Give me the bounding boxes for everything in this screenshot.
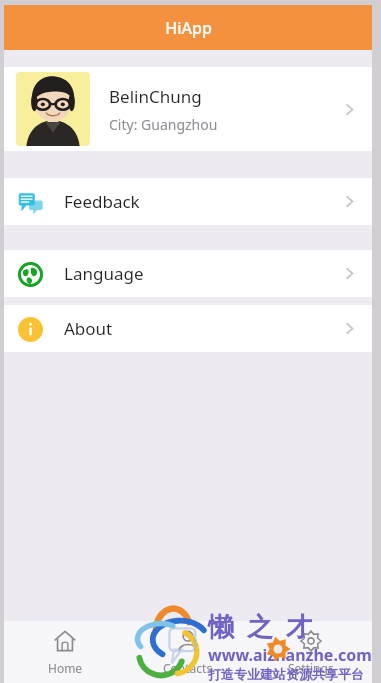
button[interactable]: Feedback — [4, 178, 372, 225]
button[interactable]: Home — [4, 621, 126, 683]
button[interactable]: About — [4, 305, 372, 352]
staticText: 之 — [247, 611, 273, 644]
staticText: www.aizhanzhe.com — [208, 644, 372, 666]
staticText: Settings — [288, 660, 334, 676]
staticText: Feedback — [64, 190, 341, 213]
staticText: BelinChung — [109, 85, 202, 108]
button[interactable]: Language — [4, 250, 372, 297]
other: Contacts — [176, 629, 200, 653]
staticText: Home — [48, 660, 83, 676]
staticText: 打造专业建站资源共享平台 — [208, 666, 364, 682]
staticText: 懒 — [208, 611, 234, 644]
staticText: City: Guangzhou — [109, 115, 218, 134]
other: Home — [53, 629, 77, 653]
staticText: Language — [64, 262, 341, 285]
staticText: About — [64, 317, 341, 340]
staticText: Contacts — [163, 660, 213, 676]
button[interactable]: Contacts — [126, 621, 249, 683]
button[interactable]: BelinChung — [4, 67, 372, 151]
button[interactable]: Settings — [249, 621, 372, 683]
staticText: HiApp — [165, 17, 212, 39]
staticText: 才 — [286, 611, 312, 644]
other: Settings — [299, 629, 323, 653]
